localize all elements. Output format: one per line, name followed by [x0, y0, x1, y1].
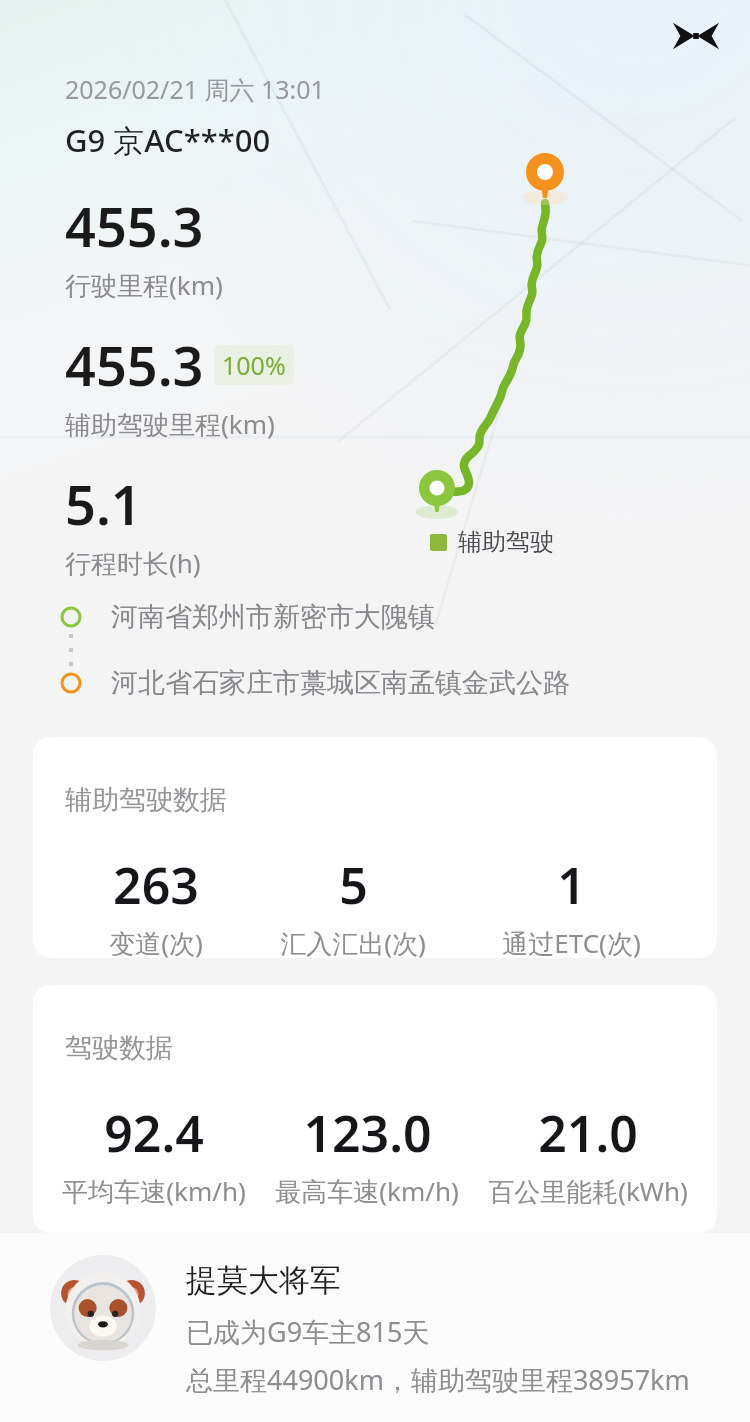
staticText: 5: [339, 851, 368, 919]
staticText: 123.0: [303, 1099, 432, 1167]
staticText: 河南省郑州市新密市大隗镇: [111, 600, 435, 634]
button[interactable]: 驾驶数据: [33, 985, 717, 1233]
button[interactable]: 辅助驾驶: [430, 527, 554, 557]
button[interactable]: XPeng logo: [670, 10, 722, 62]
staticText: 100%: [222, 348, 286, 382]
staticText: 92.4: [104, 1099, 204, 1167]
staticText: 2026/02/21 周六 13:01: [65, 72, 325, 106]
staticText: 行驶里程(km): [65, 267, 223, 303]
staticText: 辅助驾驶: [458, 527, 554, 557]
staticText: 河北省石家庄市藁城区南孟镇金武公路: [111, 666, 570, 700]
staticText: 最高车速(km/h): [275, 1173, 459, 1209]
staticText: 行程时长(h): [65, 545, 201, 581]
staticText: 通过ETC(次): [502, 925, 641, 958]
staticText: 263: [113, 851, 199, 919]
staticText: 21.0: [538, 1099, 638, 1167]
staticText: 5.1: [65, 467, 142, 541]
staticText: G9 京AC***00: [65, 119, 271, 161]
staticText: 汇入汇出(次): [280, 925, 426, 958]
staticText: 驾驶数据: [65, 1031, 173, 1065]
button[interactable]: 河北省石家庄市藁城区南孟镇金武公路: [56, 666, 570, 700]
button[interactable]: 提莫大将军: [50, 1255, 726, 1398]
staticText: 455.3: [65, 189, 204, 263]
staticText: 平均车速(km/h): [62, 1173, 246, 1209]
button[interactable]: 河南省郑州市新密市大隗镇: [56, 600, 435, 634]
staticText: 1: [557, 851, 586, 919]
staticText: 变道(次): [109, 925, 203, 958]
staticText: 提莫大将军: [186, 1261, 341, 1300]
staticText: 总里程44900km，辅助驾驶里程38957km: [186, 1361, 690, 1398]
staticText: 百公里能耗(kWh): [488, 1173, 688, 1209]
button[interactable]: 辅助驾驶数据: [33, 737, 717, 958]
staticText: 辅助驾驶数据: [65, 783, 227, 817]
staticText: 455.3: [65, 328, 204, 402]
staticText: 辅助驾驶里程(km): [65, 406, 275, 442]
staticText: 已成为G9车主815天: [186, 1313, 430, 1350]
